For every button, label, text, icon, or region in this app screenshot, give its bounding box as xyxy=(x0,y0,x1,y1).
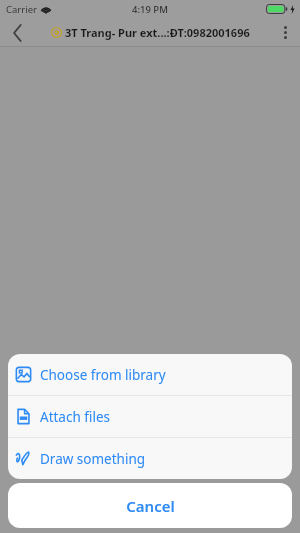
button[interactable]: More options xyxy=(270,18,300,47)
staticText: Choose from library xyxy=(40,366,166,384)
staticText: Attach files xyxy=(40,408,110,426)
button[interactable]: Attach files xyxy=(8,396,292,437)
staticText: 4:19 PM xyxy=(132,3,168,16)
button[interactable]: Cancel xyxy=(8,483,292,528)
button[interactable]: Back xyxy=(0,18,34,47)
staticText: Carrier xyxy=(6,3,37,16)
button[interactable]: Choose from library xyxy=(8,354,292,395)
staticText: Cancel xyxy=(126,496,175,516)
staticText: Draw something xyxy=(40,450,146,468)
button[interactable]: Draw something xyxy=(8,438,292,479)
staticText: 3T Trang- Pur ext...:ÐT:0982001696 xyxy=(65,25,250,40)
